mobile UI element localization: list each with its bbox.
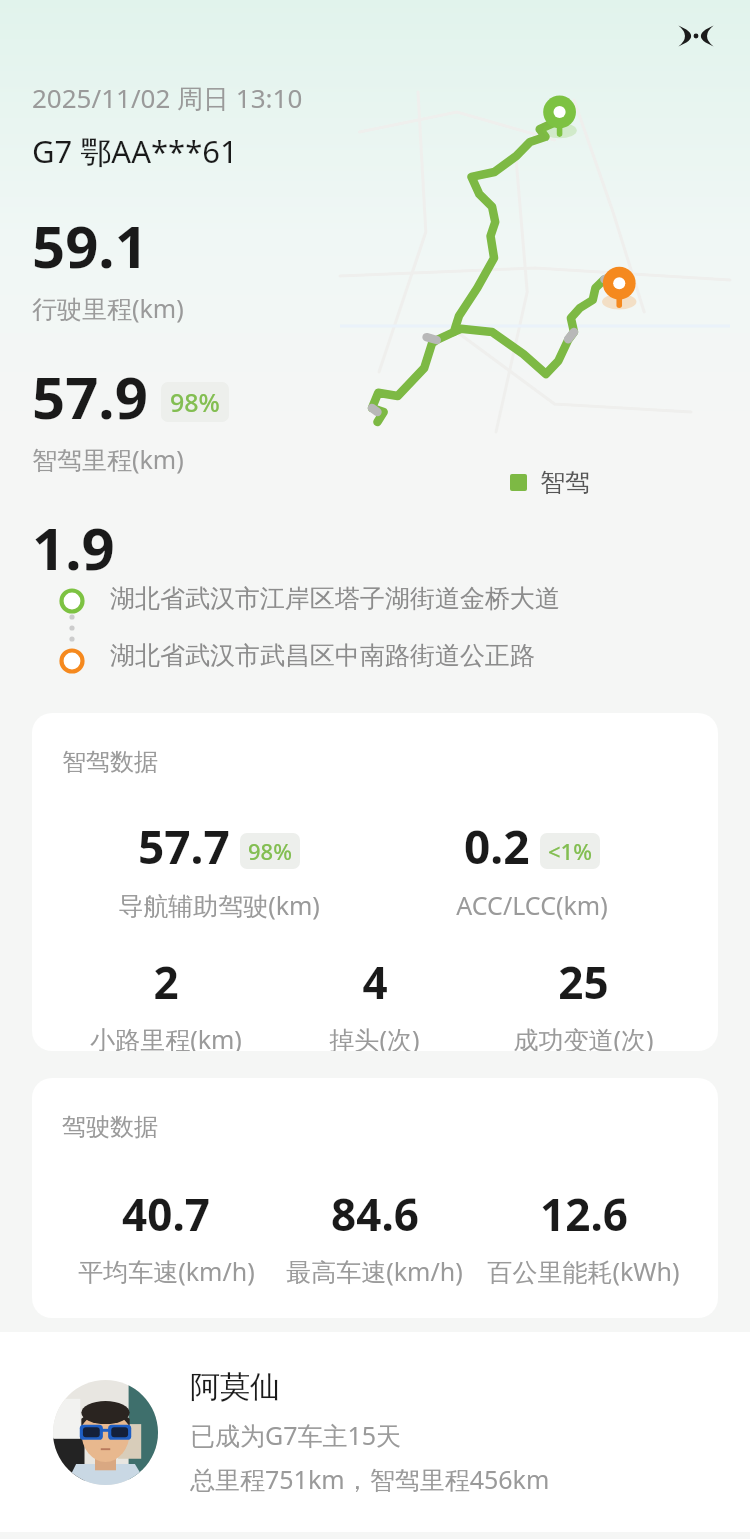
staticText: ACC/LCC(km) (456, 888, 608, 922)
staticText: 智驾 (540, 467, 590, 498)
staticText: G7 鄂AA***61 (32, 130, 238, 172)
staticText: 2025/11/02 周日 13:10 (32, 80, 303, 116)
staticText: 总里程751km，智驾里程456km (190, 1462, 550, 1496)
staticText: 智驾数据 (62, 747, 158, 777)
staticText: 59.1 (32, 206, 148, 285)
staticText: <1% (548, 836, 592, 866)
staticText: 驾驶数据 (62, 1112, 158, 1142)
staticText: 行驶里程(km) (32, 291, 184, 325)
staticText: 25 (558, 952, 609, 1012)
staticText: 已成为G7车主15天 (190, 1418, 402, 1452)
staticText: 4 (362, 952, 388, 1012)
staticText: 湖北省武汉市武昌区中南路街道公正路 (110, 640, 535, 671)
staticText: 12.6 (540, 1184, 628, 1244)
staticText: 0.2 (464, 815, 530, 878)
staticText: 最高车速(km/h) (286, 1254, 463, 1288)
staticText: 98% (248, 836, 292, 866)
staticText: 成功变道(次) (513, 1022, 654, 1051)
button[interactable]: Close (668, 8, 724, 64)
staticText: 84.6 (331, 1184, 419, 1244)
staticText: 掉头(次) (329, 1022, 420, 1051)
button[interactable]: 驾驶数据 (32, 1078, 718, 1318)
staticText: 40.7 (122, 1184, 210, 1244)
staticText: 湖北省武汉市江岸区塔子湖街道金桥大道 (110, 583, 560, 614)
staticText: 57.9 (32, 357, 148, 436)
staticText: 平均车速(km/h) (78, 1254, 255, 1288)
staticText: 阿莫仙 (190, 1368, 280, 1406)
button[interactable]: 阿莫仙 (0, 1332, 750, 1532)
staticText: 2 (153, 952, 179, 1012)
staticText: 智驾里程(km) (32, 442, 184, 476)
staticText: 98% (170, 385, 220, 419)
staticText: 导航辅助驾驶(km) (118, 888, 320, 922)
button[interactable]: 智驾数据 (32, 713, 718, 1051)
staticText: 小路里程(km) (90, 1022, 242, 1051)
staticText: 百公里能耗(kWh) (487, 1254, 680, 1288)
staticText: 1.9 (32, 508, 115, 572)
staticText: 57.7 (138, 815, 230, 878)
